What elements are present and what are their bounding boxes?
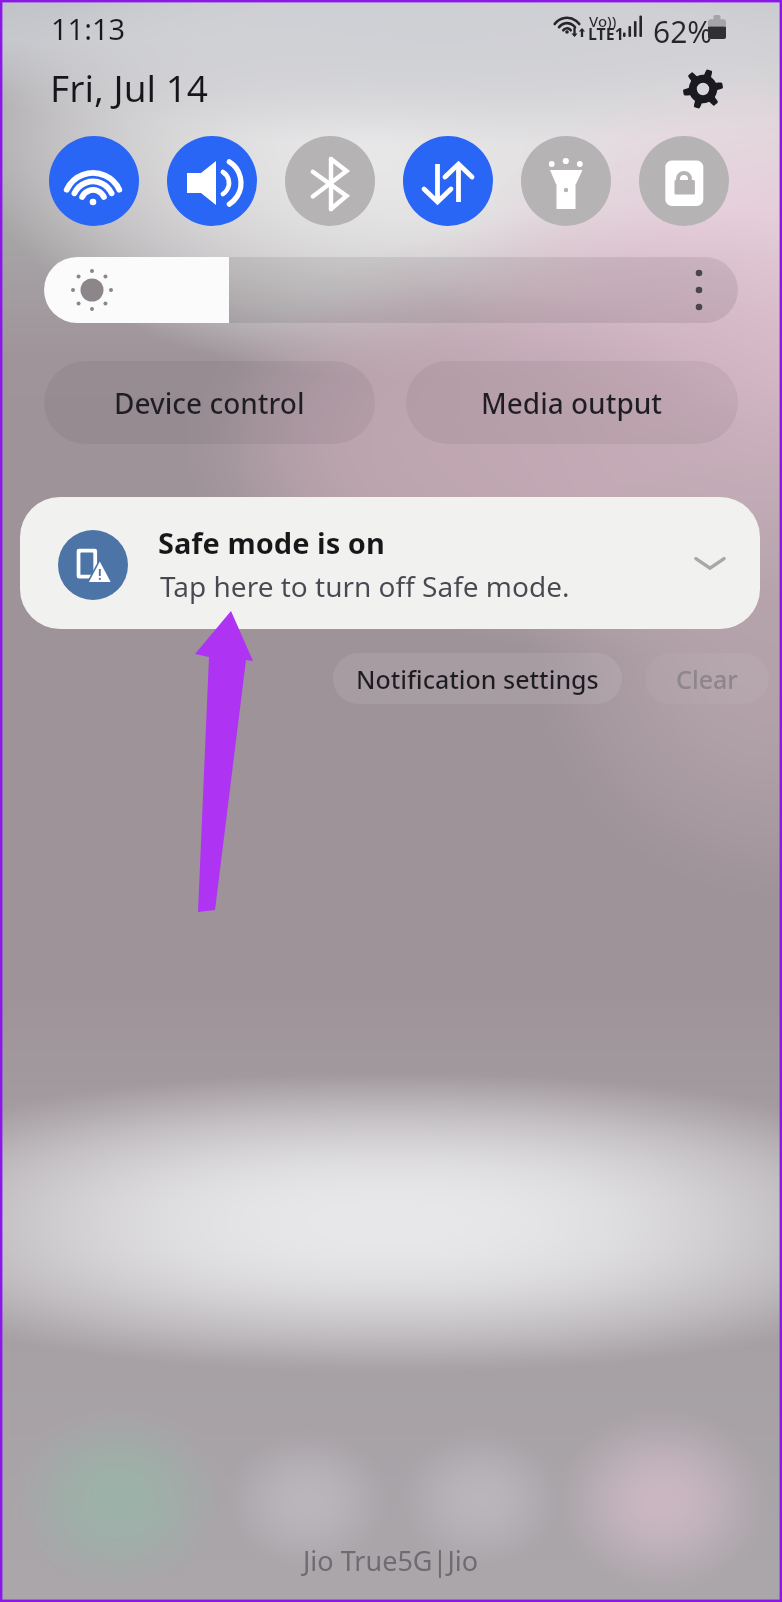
button[interactable]: Flashlight [521,136,611,226]
staticText: Tap here to turn off Safe mode. [160,567,570,605]
staticText: 62% [653,11,713,52]
staticText: Fri, Jul 14 [50,62,209,112]
staticText: Media output [481,384,663,422]
staticText: Vo)) [589,11,617,31]
staticText: Device control [114,384,305,422]
button[interactable]: Media output [406,361,738,444]
button[interactable]: Expand notification [684,537,736,589]
button[interactable]: Screen lock [639,136,729,226]
button[interactable]: Notification settings [333,653,622,704]
staticText: Jio True5G|Jio [303,1542,479,1579]
button[interactable]: Settings [678,64,728,114]
staticText: Notification settings [356,662,599,696]
button[interactable]: Brightness [44,257,738,323]
button[interactable]: Device control [44,361,375,444]
button[interactable]: Safe mode is on [20,497,760,629]
staticText: Clear [676,662,738,696]
button[interactable]: Clear [645,653,769,704]
button[interactable]: Wi-Fi [49,136,139,226]
button[interactable]: Bluetooth [285,136,375,226]
button[interactable]: Sound [167,136,257,226]
button[interactable]: Mobile data [403,136,493,226]
staticText: 11:13 [51,9,126,48]
staticText: LTE1 [588,23,624,45]
staticText: Safe mode is on [158,523,385,562]
